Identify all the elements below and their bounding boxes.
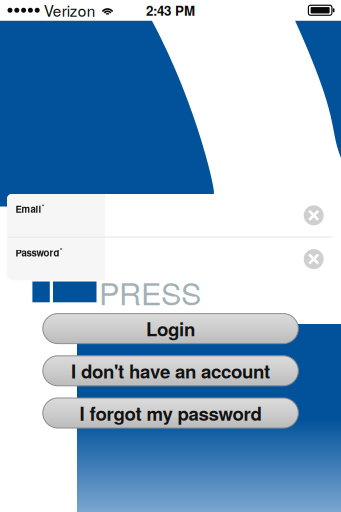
- button[interactable]: I forgot my password: [43, 398, 298, 428]
- staticText: Email: [15, 202, 41, 216]
- staticText: PRESS: [99, 270, 201, 314]
- staticText: I don't have an account: [71, 357, 270, 384]
- staticText: 2:43 PM: [146, 1, 195, 20]
- staticText: Password: [15, 246, 59, 259]
- button[interactable]: Login: [43, 314, 298, 344]
- button[interactable]: Clear: [304, 205, 324, 225]
- button[interactable]: Clear: [304, 249, 324, 269]
- staticText: *: [41, 201, 44, 212]
- staticText: Verizon: [44, 0, 96, 21]
- button[interactable]: I don't have an account: [43, 356, 298, 386]
- staticText: *: [59, 245, 62, 256]
- staticText: Login: [146, 315, 195, 342]
- staticText: I forgot my password: [79, 400, 261, 426]
